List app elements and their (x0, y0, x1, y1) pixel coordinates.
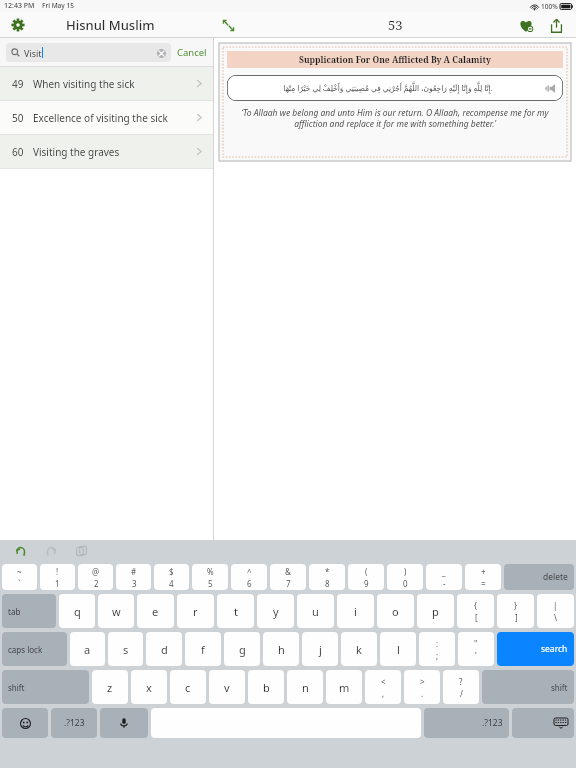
staticText: Hisnul Muslim (66, 16, 155, 34)
button[interactable]: | (537, 594, 574, 628)
button[interactable]: b (248, 670, 284, 704)
button[interactable]: : (419, 632, 455, 666)
button[interactable]: ! (40, 564, 75, 590)
button[interactable]: Remove from favourites (513, 13, 539, 37)
button[interactable]: ^ (231, 564, 267, 590)
button[interactable]: caps lock (2, 632, 67, 666)
button[interactable]: 60 (0, 135, 213, 168)
button[interactable]: + (465, 564, 501, 590)
button[interactable]: Hide keyboard (512, 708, 574, 738)
staticText: o (392, 604, 399, 619)
button[interactable]: y (257, 594, 294, 628)
button[interactable]: q (59, 594, 95, 628)
button[interactable]: * (309, 564, 345, 590)
button[interactable]: z (92, 670, 128, 704)
button[interactable]: k (341, 632, 377, 666)
button[interactable]: s (108, 632, 143, 666)
staticText: * (325, 566, 330, 577)
button[interactable]: Expand (215, 12, 241, 38)
button[interactable]: v (209, 670, 245, 704)
button[interactable]: i (337, 594, 374, 628)
button[interactable]: search (497, 632, 574, 666)
button[interactable]: n (287, 670, 323, 704)
staticText: Supplication For One Afflicted By A Cala… (299, 54, 491, 66)
button[interactable]: f (185, 632, 221, 666)
staticText: Fri May 15 (42, 1, 74, 10)
button[interactable]: c (170, 670, 206, 704)
button[interactable]: m (326, 670, 362, 704)
button[interactable]: { (457, 594, 494, 628)
button[interactable]: < (365, 670, 401, 704)
button[interactable]: Paste (70, 540, 92, 562)
button[interactable]: & (270, 564, 306, 590)
button[interactable]: a (70, 632, 105, 666)
button[interactable]: Share (543, 13, 569, 37)
staticText: 12:43 PM (4, 1, 35, 11)
button[interactable]: Undo (10, 540, 32, 562)
button[interactable]: Play audio (543, 81, 557, 95)
button[interactable]: .?123 (51, 708, 97, 738)
staticText: ! (56, 566, 59, 577)
staticText: = (481, 578, 486, 589)
staticText: ` (18, 578, 21, 589)
button[interactable]: x (131, 670, 167, 704)
button[interactable]: $ (154, 564, 189, 590)
staticText: y (273, 604, 279, 619)
staticText: w (112, 604, 121, 619)
button[interactable]: Dictate (100, 708, 148, 738)
staticText: . (421, 688, 424, 699)
staticText: q (74, 604, 81, 619)
button[interactable]: d (146, 632, 182, 666)
button[interactable]: Cancel (171, 38, 213, 66)
button[interactable]: Redo (40, 540, 62, 562)
button[interactable]: إِنَّا لِلَّهِ وَإِنَّا إِلَيْهِ رَاجِعُ… (227, 75, 563, 101)
button[interactable]: r (177, 594, 214, 628)
button[interactable]: e (137, 594, 174, 628)
button[interactable]: g (224, 632, 260, 666)
button[interactable]: tab (2, 594, 56, 628)
button[interactable]: # (116, 564, 151, 590)
staticText: ( (365, 566, 368, 577)
staticText: $ (169, 566, 174, 577)
button[interactable]: " (458, 632, 494, 666)
button[interactable]: } (497, 594, 534, 628)
button[interactable]: w (98, 594, 134, 628)
button[interactable]: 50 (0, 101, 213, 134)
button[interactable]: .?123 (424, 708, 509, 738)
staticText: tab (8, 606, 21, 617)
button[interactable]: Clear (153, 45, 169, 61)
staticText: shift (551, 682, 568, 693)
button[interactable]: shift (482, 670, 574, 704)
staticText: p (432, 604, 439, 619)
button[interactable]: shift (2, 670, 89, 704)
button[interactable]: p (417, 594, 454, 628)
button[interactable]: delete (504, 564, 574, 590)
button[interactable]: t (217, 594, 254, 628)
staticText: 5 (208, 578, 213, 589)
button[interactable]: Emoji (2, 708, 48, 738)
staticText: ^ (247, 566, 252, 577)
staticText: i (354, 604, 357, 619)
staticText: l (397, 642, 400, 657)
button[interactable]: ~ (2, 564, 37, 590)
button[interactable]: > (404, 670, 440, 704)
button[interactable]: Settings (6, 12, 30, 38)
button[interactable]: ( (348, 564, 384, 590)
button[interactable]: o (377, 594, 414, 628)
staticText: z (107, 680, 113, 695)
button[interactable]: u (297, 594, 334, 628)
button[interactable]: ) (387, 564, 423, 590)
button[interactable]: ? (443, 670, 479, 704)
button[interactable]: l (380, 632, 416, 666)
button[interactable]: % (192, 564, 228, 590)
button[interactable]: Visit (6, 43, 171, 62)
staticText: g (239, 642, 246, 657)
staticText: > (420, 676, 425, 687)
button[interactable]: h (263, 632, 299, 666)
button[interactable]: j (302, 632, 338, 666)
staticText: 0 (403, 578, 408, 589)
button[interactable]: _ (426, 564, 462, 590)
button[interactable]: @ (78, 564, 113, 590)
button[interactable]: 49 (0, 67, 213, 100)
